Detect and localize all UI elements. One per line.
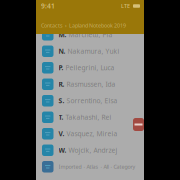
button[interactable]: N. — [36, 43, 144, 59]
button[interactable]: T. — [36, 109, 144, 125]
staticText: P. — [58, 63, 63, 72]
staticText: R. — [58, 80, 64, 89]
staticText: Takahashi, Rei — [63, 113, 111, 122]
staticText: Imported · Atlas · All · Category — [58, 163, 135, 170]
staticText: Pellegrini, Luca — [63, 63, 114, 72]
staticText: Wojcik, Andrzej — [66, 146, 117, 155]
staticText: 9:41 — [41, 2, 55, 10]
button[interactable]: S. — [36, 92, 144, 109]
button[interactable]: M. — [36, 26, 144, 43]
button[interactable]: Delete — [133, 118, 144, 131]
button[interactable]: L. — [36, 10, 144, 26]
button[interactable]: W. — [36, 142, 144, 158]
staticText: LTE — [121, 2, 130, 10]
staticText: Marchetti, Pia — [66, 30, 112, 39]
staticText: M. — [58, 30, 66, 39]
staticText: Vasquez, Mireia — [64, 129, 117, 138]
staticText: Nakamura, Yuki — [65, 47, 119, 56]
staticText: T. — [58, 113, 63, 122]
staticText: S. — [58, 96, 64, 105]
button[interactable]: V. — [36, 125, 144, 142]
staticText: V. — [58, 129, 64, 138]
button[interactable]: P. — [36, 59, 144, 76]
staticText: Sorrentino, Elsa — [64, 96, 117, 105]
staticText: N. — [58, 47, 65, 56]
button[interactable]: R. — [36, 76, 144, 92]
staticText: Rasmussen, Ida — [64, 80, 115, 89]
button[interactable]: Contacts › Lapland Notebook 2019 — [41, 22, 126, 29]
button[interactable]: Imported · Atlas · All · Category — [36, 158, 144, 175]
staticText: W. — [58, 146, 66, 155]
staticText: Contacts › Lapland Notebook 2019 — [41, 22, 126, 29]
